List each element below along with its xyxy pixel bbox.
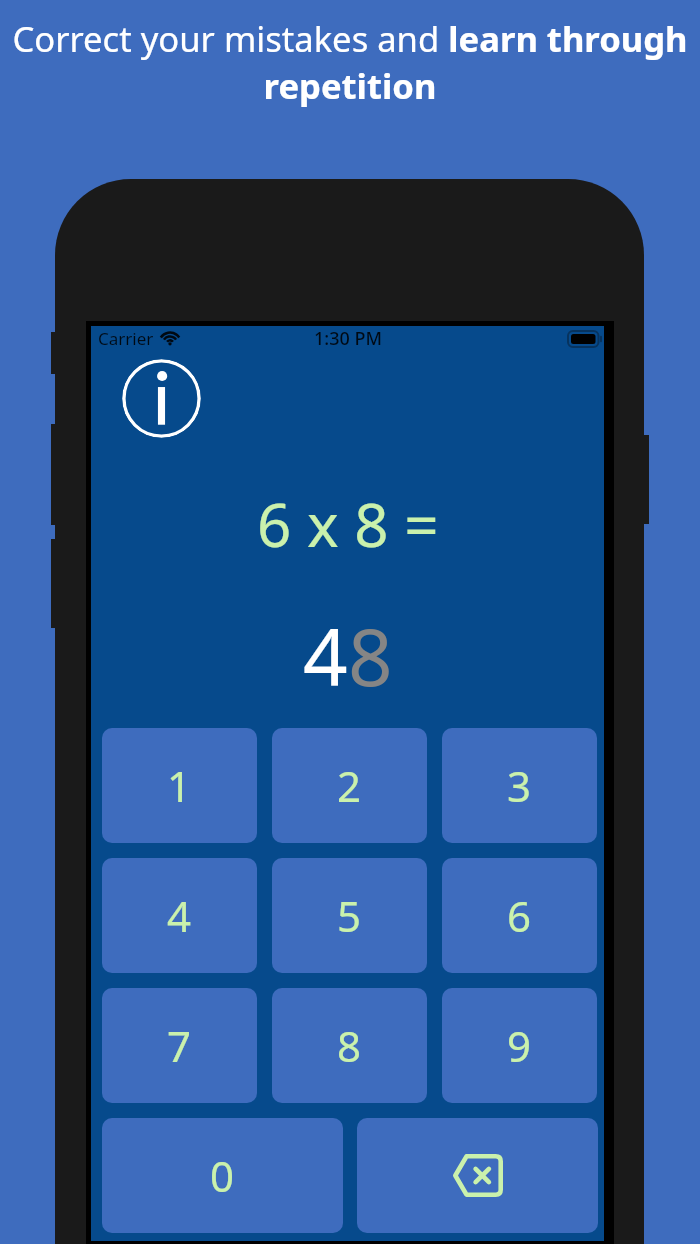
staticText: 3 xyxy=(507,757,532,814)
staticText: 8 xyxy=(348,603,393,709)
button[interactable]: 4 xyxy=(102,858,257,973)
staticText: 4 xyxy=(303,603,348,709)
staticText: 8 xyxy=(337,1017,362,1074)
staticText: 9 xyxy=(507,1017,532,1074)
staticText: Carrier xyxy=(98,327,154,350)
button[interactable]: Info xyxy=(122,359,201,438)
staticText: 6 x 8 = xyxy=(257,483,439,565)
staticText: 4 xyxy=(167,887,192,944)
staticText: 5 xyxy=(337,887,362,944)
staticText: 2 xyxy=(337,757,362,814)
staticText: 1:30 PM xyxy=(314,326,382,351)
button[interactable]: 9 xyxy=(442,988,597,1103)
staticText: 7 xyxy=(167,1017,192,1074)
staticText: 0 xyxy=(210,1147,235,1204)
staticText: 1 xyxy=(167,757,192,814)
button[interactable]: 6 xyxy=(442,858,597,973)
button[interactable]: 8 xyxy=(272,988,427,1103)
button[interactable]: 5 xyxy=(272,858,427,973)
button[interactable]: 7 xyxy=(102,988,257,1103)
button[interactable]: 2 xyxy=(272,728,427,843)
button[interactable]: 3 xyxy=(442,728,597,843)
button[interactable]: 0 xyxy=(102,1118,343,1233)
button[interactable]: Backspace xyxy=(357,1118,598,1233)
staticText: 6 xyxy=(507,887,532,944)
staticText: Correct your mistakes and learn through … xyxy=(8,15,692,109)
button[interactable]: 1 xyxy=(102,728,257,843)
